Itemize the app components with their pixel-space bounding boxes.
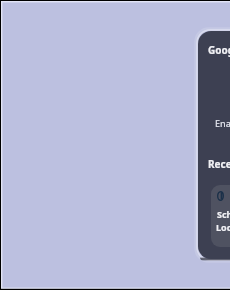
button[interactable]: Location (211, 185, 230, 247)
staticText: School (217, 208, 230, 220)
staticText: Location (216, 221, 230, 233)
staticText: Google (208, 43, 230, 57)
staticText: Recent (208, 157, 230, 171)
button[interactable]: Enable (215, 117, 230, 129)
other: Location (217, 191, 224, 201)
staticText: Enable (215, 117, 230, 129)
